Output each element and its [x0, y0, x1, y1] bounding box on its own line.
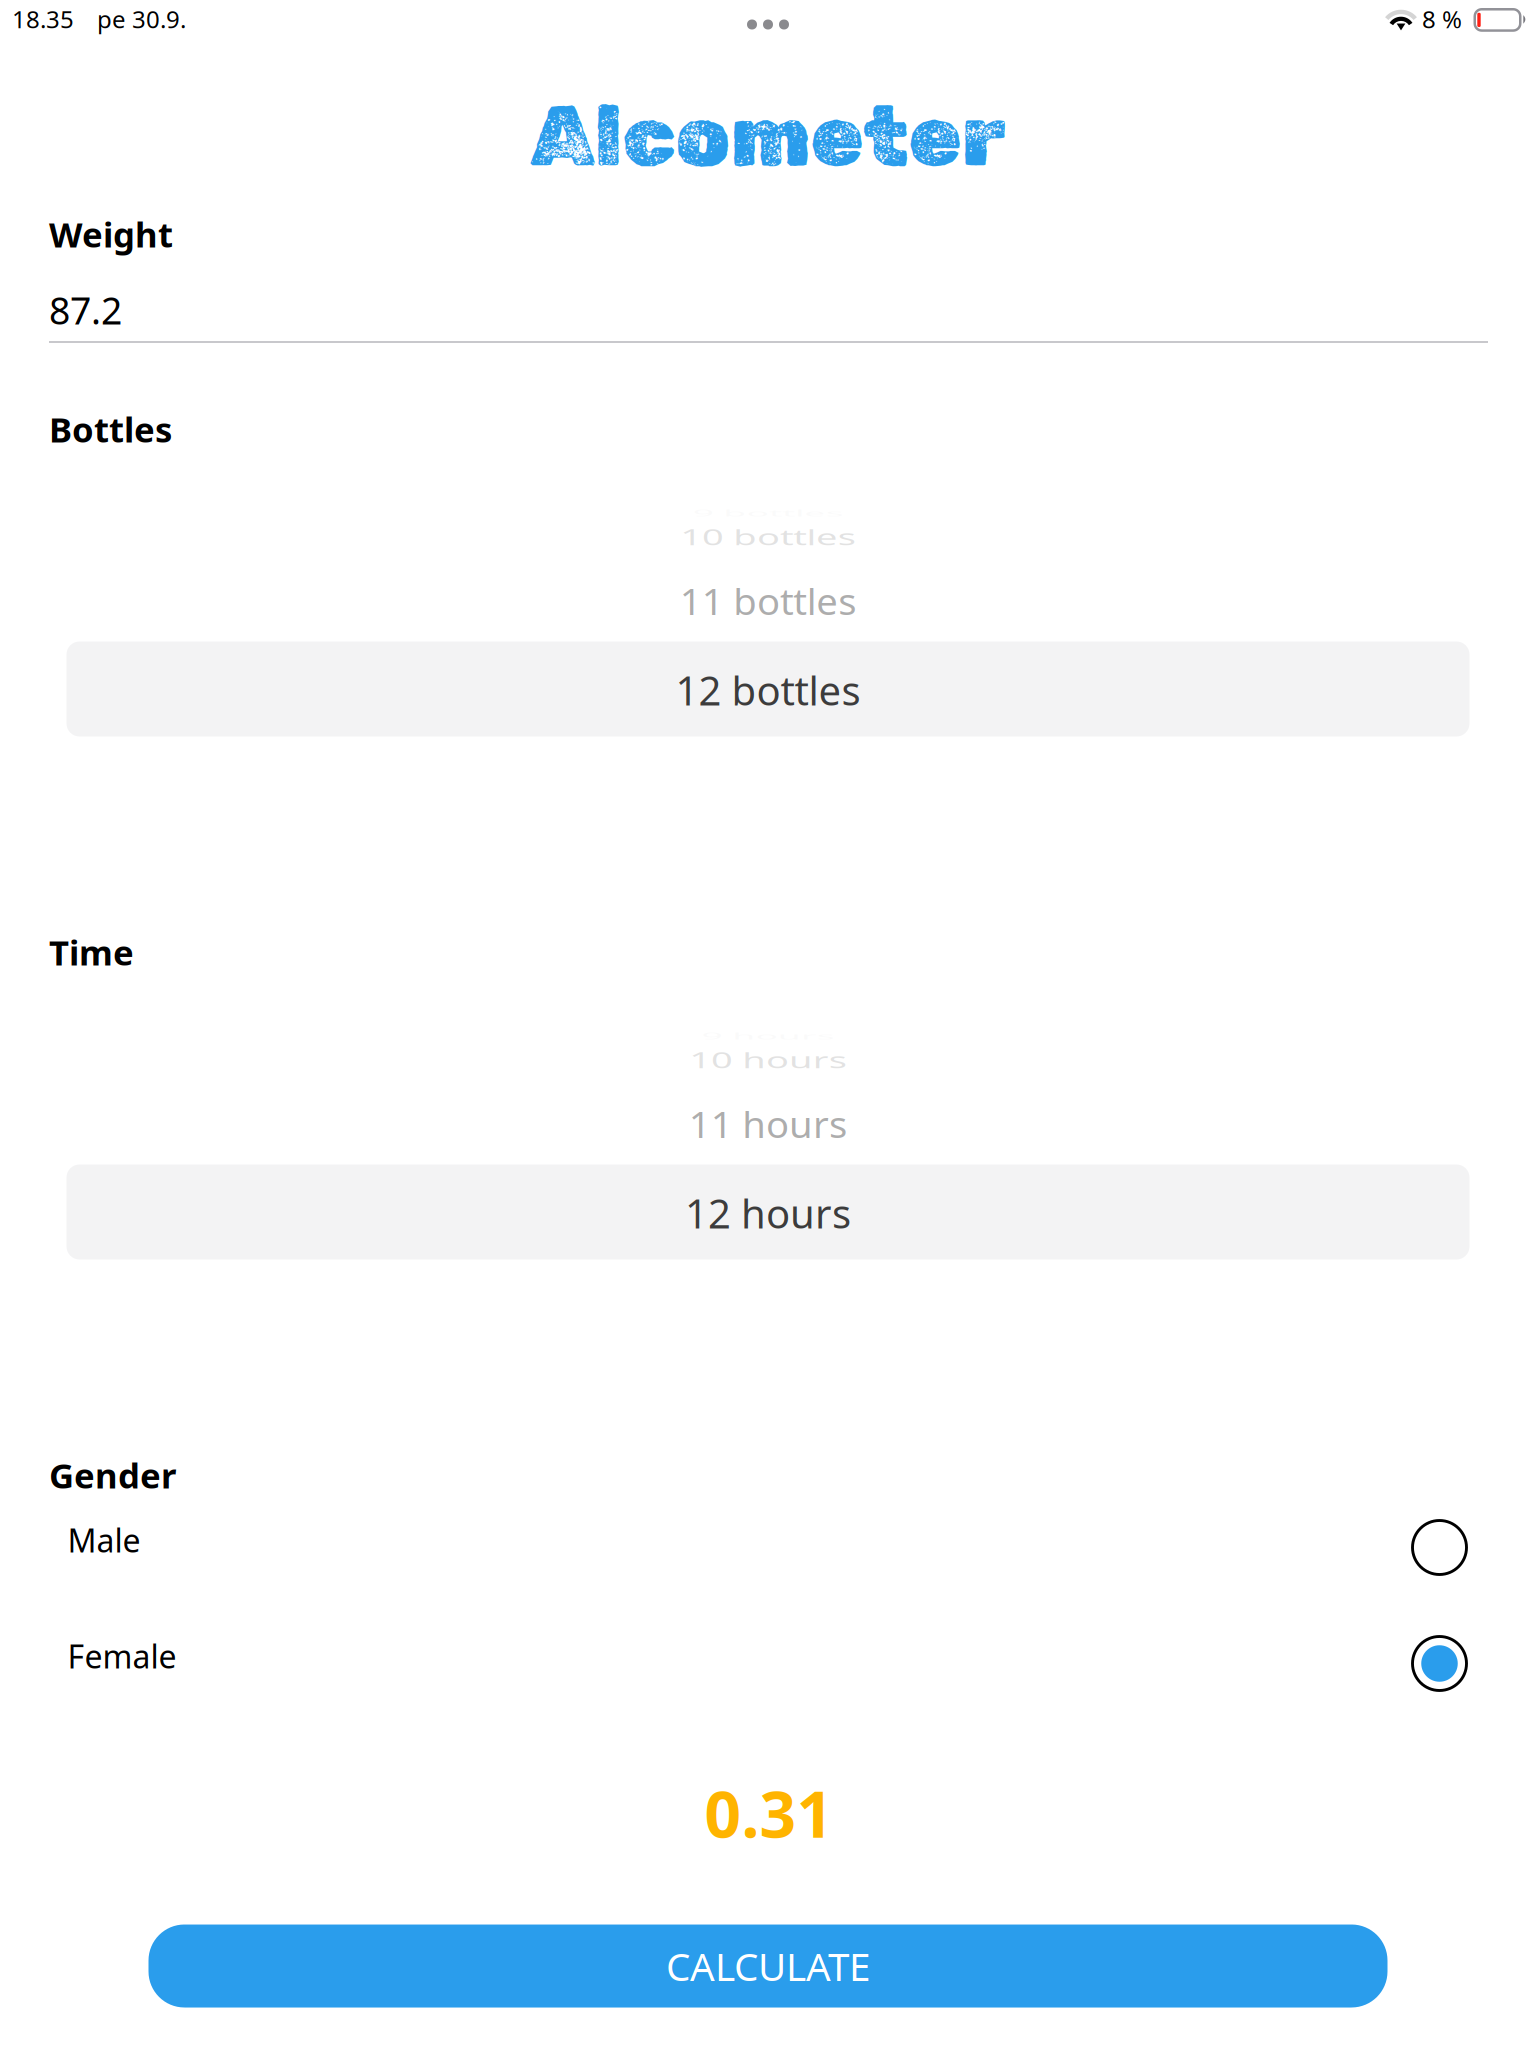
staticText: 10 bottles: [675, 510, 860, 563]
staticText: 9 hours: [696, 1009, 839, 1062]
staticText: 12 hours: [685, 1186, 851, 1239]
staticText: 10 hours: [685, 1033, 851, 1086]
button[interactable]: Male: [0, 1482, 1536, 1598]
staticText: Female: [67, 1635, 176, 1677]
staticText: 11 bottles: [675, 574, 860, 627]
staticText: CALCULATE: [666, 1940, 870, 1992]
staticText: Alcometer: [530, 85, 1005, 186]
staticText: 9 bottles: [687, 486, 849, 539]
staticText: Weight: [49, 211, 173, 257]
staticText: Gender: [49, 1452, 176, 1498]
button[interactable]: 87.2: [49, 280, 1488, 344]
staticText: Male: [67, 1519, 140, 1561]
staticText: 8 %: [1422, 3, 1462, 35]
staticText: 18.35: [12, 3, 74, 35]
button[interactable]: 12 hours: [0, 1017, 1536, 1433]
staticText: 0.31: [704, 1770, 833, 1855]
staticText: 87.2: [49, 285, 122, 335]
staticText: Bottles: [49, 406, 172, 452]
staticText: Time: [49, 929, 134, 975]
staticText: 12 bottles: [675, 663, 860, 716]
button[interactable]: 12 bottles: [0, 494, 1536, 910]
button[interactable]: Female: [0, 1598, 1536, 1714]
staticText: pe 30.9.: [97, 3, 186, 35]
button[interactable]: CALCULATE: [148, 1924, 1387, 2007]
staticText: 11 hours: [685, 1097, 851, 1150]
